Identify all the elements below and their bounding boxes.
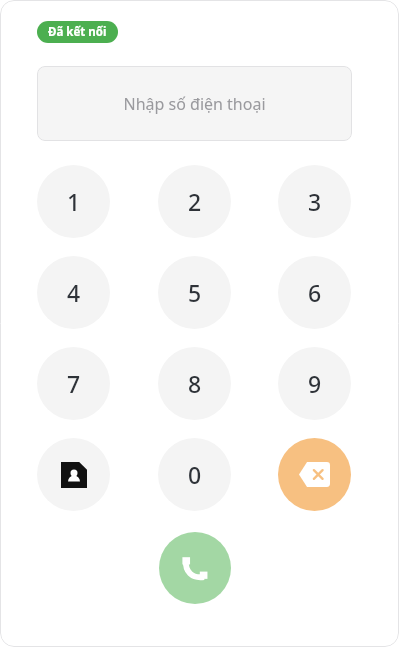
button[interactable]: 8 bbox=[158, 347, 231, 420]
staticText: 5 bbox=[188, 277, 202, 308]
button[interactable]: 5 bbox=[158, 256, 231, 329]
button[interactable]: Call bbox=[159, 532, 231, 604]
button[interactable]: Đã kết nối bbox=[37, 21, 118, 43]
button[interactable]: 0 bbox=[158, 438, 231, 511]
staticText: 3 bbox=[308, 186, 322, 217]
button[interactable]: 4 bbox=[37, 256, 110, 329]
staticText: 8 bbox=[188, 368, 202, 399]
staticText: 2 bbox=[188, 186, 202, 217]
staticText: 6 bbox=[308, 277, 322, 308]
button[interactable]: Contacts bbox=[37, 438, 110, 511]
staticText: 7 bbox=[67, 368, 81, 399]
button[interactable]: 9 bbox=[278, 347, 351, 420]
staticText: Đã kết nối bbox=[48, 24, 107, 40]
staticText: 4 bbox=[67, 277, 81, 308]
staticText: 9 bbox=[308, 368, 322, 399]
button[interactable]: Nhập số điện thoại bbox=[37, 66, 352, 141]
button[interactable]: 1 bbox=[37, 165, 110, 238]
button[interactable]: 6 bbox=[278, 256, 351, 329]
staticText: Nhập số điện thoại bbox=[123, 93, 266, 115]
staticText: 1 bbox=[67, 186, 81, 217]
staticText: 0 bbox=[188, 459, 202, 490]
button[interactable]: 7 bbox=[37, 347, 110, 420]
button[interactable]: 2 bbox=[158, 165, 231, 238]
button[interactable]: Backspace bbox=[278, 438, 351, 511]
button[interactable]: 3 bbox=[278, 165, 351, 238]
